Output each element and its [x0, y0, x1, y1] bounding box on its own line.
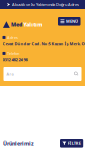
staticText: Ara: [6, 71, 13, 77]
staticText: Med: [11, 21, 22, 28]
staticText: Akustik ve Isı Yalıtımında Doğru Adres: [12, 2, 79, 7]
staticText: Telefon: [7, 51, 19, 56]
staticText: Yalıtım: [23, 21, 42, 28]
staticText: Cevat Dündar Cad. No:5 Kazan İş Merk. OS…: [2, 41, 85, 46]
staticText: 0312 482 24 98: [2, 57, 27, 62]
staticText: MENÜ: [66, 19, 78, 24]
button[interactable]: MENÜ: [58, 17, 80, 26]
button[interactable]: FİLTRE: [60, 139, 83, 148]
staticText: Adres: [7, 35, 18, 40]
staticText: FİLTRE: [68, 141, 81, 146]
staticText: Ürünlerimiz: [3, 140, 34, 147]
